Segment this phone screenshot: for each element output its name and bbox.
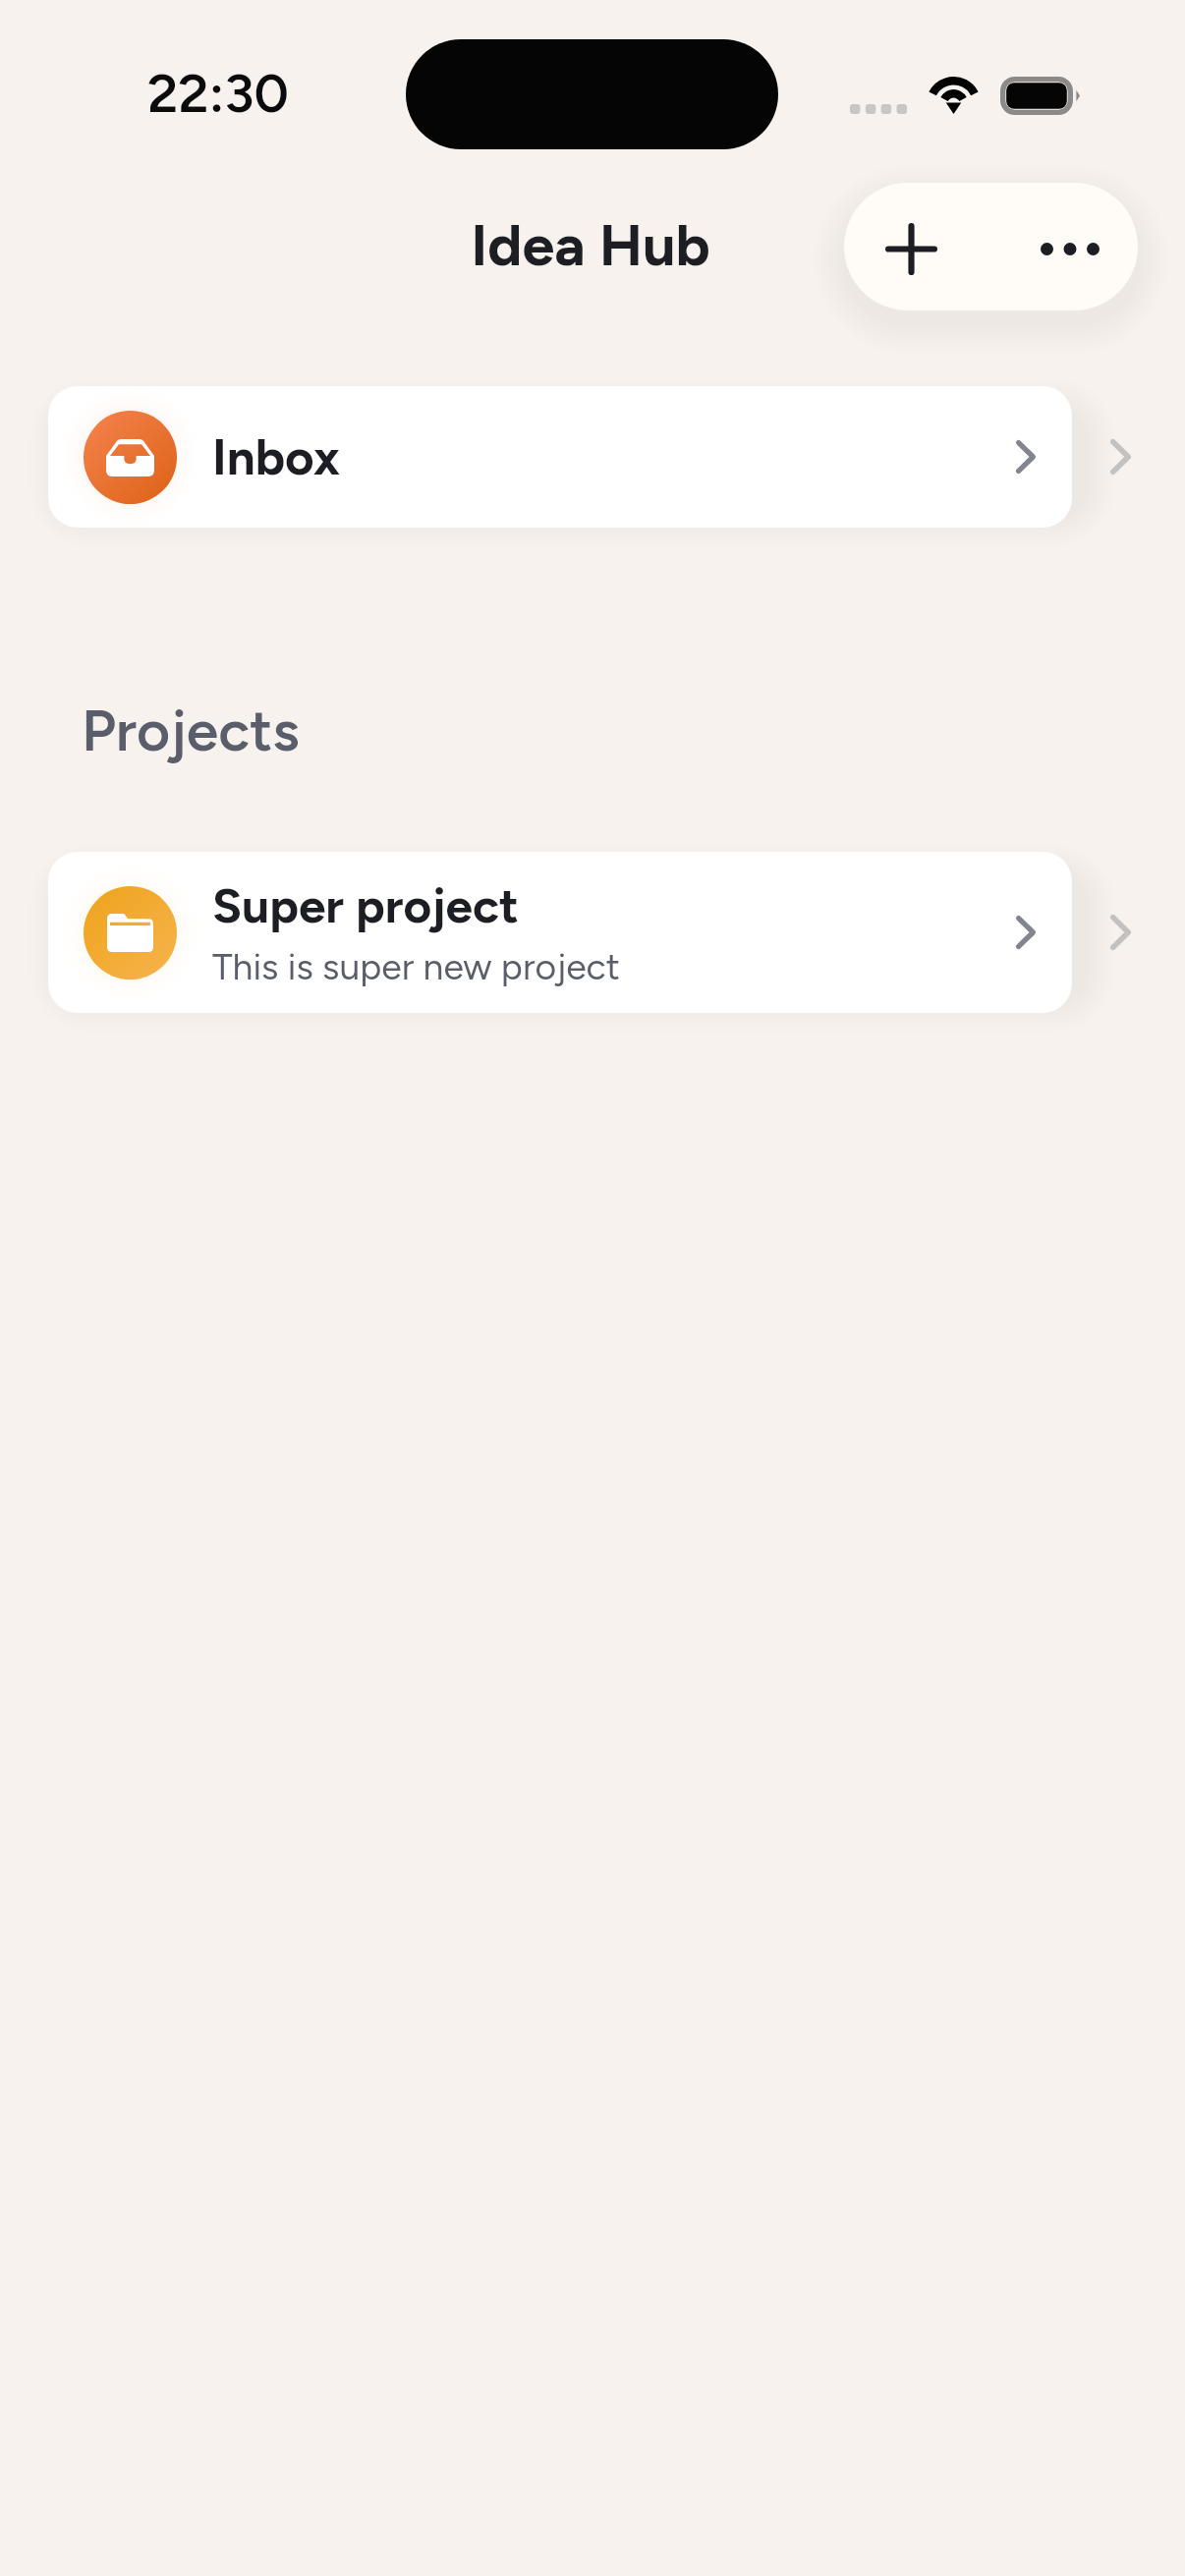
button[interactable]: Inbox (48, 386, 1072, 528)
button[interactable]: Open next project (1094, 897, 1147, 968)
staticText: 22:30 (147, 61, 289, 126)
staticText: This is super new project (212, 945, 620, 989)
staticText: Super project (212, 876, 519, 934)
staticText: Projects (82, 696, 300, 765)
button[interactable]: Super project (48, 852, 1072, 1013)
button[interactable]: Open next item (1094, 421, 1147, 492)
staticText: Inbox (212, 427, 341, 487)
button[interactable]: Add (844, 183, 990, 310)
staticText: Idea Hub (0, 210, 1183, 280)
button[interactable]: More options (990, 183, 1137, 310)
